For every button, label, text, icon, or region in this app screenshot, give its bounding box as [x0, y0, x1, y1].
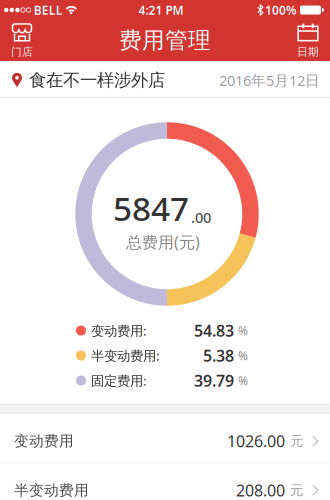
staticText: 门店 [11, 45, 33, 58]
staticText: BELL [34, 2, 63, 18]
staticText: 39.79 [194, 370, 234, 391]
staticText: 半变动费用: [91, 347, 160, 364]
staticText: .00 [191, 208, 211, 227]
staticText: 5.38 [203, 345, 234, 366]
staticText: 费用管理 [119, 27, 211, 54]
button[interactable]: 门店 [0, 22, 33, 58]
staticText: 变动费用 [14, 432, 74, 450]
staticText: 食在不一样涉外店 [29, 70, 165, 91]
button[interactable]: 半变动费用 [0, 463, 330, 500]
staticText: 变动费用: [91, 322, 147, 339]
staticText: % [238, 347, 248, 363]
staticText: 2016年5月12日 [219, 71, 320, 90]
staticText: 固定费用: [91, 372, 147, 389]
staticText: 4:21 PM [138, 2, 183, 18]
button[interactable]: 变动费用 [0, 414, 330, 463]
staticText: 总费用(元) [126, 231, 200, 253]
staticText: 208.00 [236, 480, 285, 500]
staticText: 元 [290, 482, 303, 498]
staticText: 日期 [297, 45, 319, 58]
staticText: 5847 [113, 186, 189, 230]
staticText: 1026.00 [227, 430, 285, 452]
staticText: 半变动费用 [14, 481, 89, 499]
staticText: % [238, 372, 248, 388]
staticText: % [238, 322, 248, 338]
button[interactable]: 日期 [297, 22, 330, 58]
staticText: 54.83 [194, 320, 234, 341]
staticText: 100% [265, 2, 297, 18]
staticText: 元 [290, 433, 303, 449]
